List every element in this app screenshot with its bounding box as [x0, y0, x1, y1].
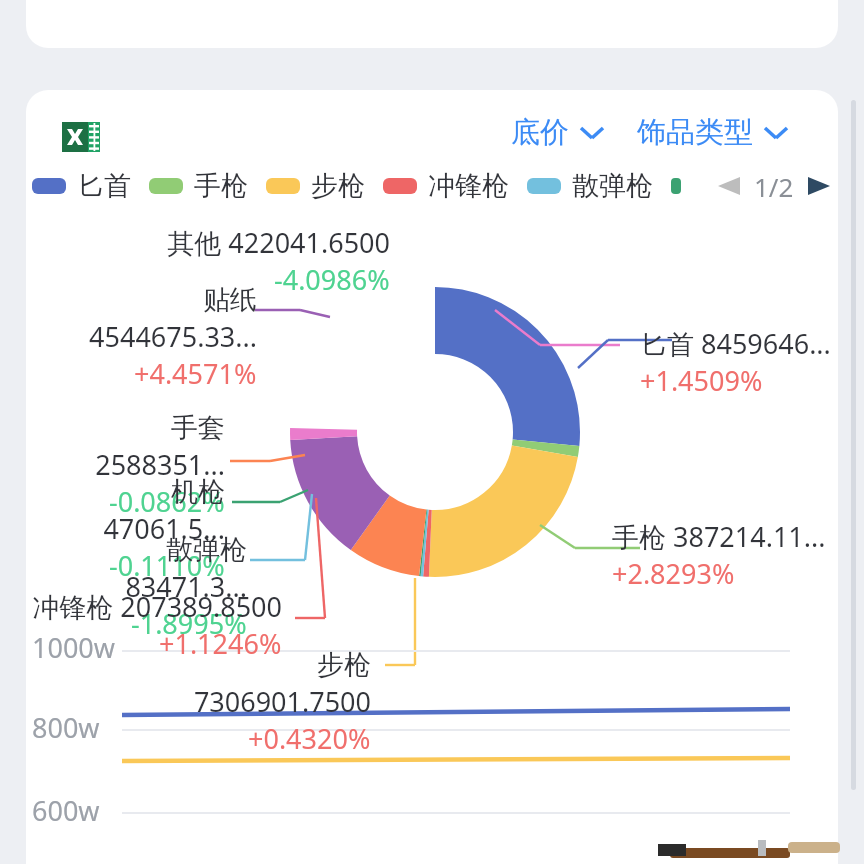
staticText: 贴纸 4544675.33... — [42, 280, 257, 355]
staticText: 匕首 8459646... — [640, 325, 831, 362]
staticText: 饰品类型 — [637, 114, 753, 151]
staticText: +2.8293% — [612, 555, 735, 592]
staticText: 800w — [32, 709, 100, 746]
button[interactable]: Next page — [802, 169, 836, 203]
button[interactable]: 手枪 — [149, 169, 248, 203]
staticText: -4.0986% — [274, 261, 390, 298]
button[interactable]: 底价 — [505, 114, 609, 151]
staticText: -1.8995% — [131, 605, 247, 642]
staticText: 散弹枪 83471.3... — [42, 530, 247, 605]
staticText: 600w — [32, 792, 100, 829]
staticText: 1000w — [32, 629, 115, 666]
staticText: +4.4571% — [134, 355, 257, 392]
staticText: -0.1110% — [109, 547, 225, 584]
staticText: +0.4320% — [248, 720, 371, 757]
staticText: 步枪 7306901.7500 — [136, 645, 371, 720]
button[interactable]: 步枪 — [266, 169, 365, 203]
button[interactable]: 匕首 — [32, 169, 131, 203]
button[interactable]: 饰品类型 — [631, 114, 793, 151]
staticText: 冲锋枪 — [428, 169, 509, 203]
button[interactable]: 冲锋枪 — [383, 169, 509, 203]
staticText: +1.4509% — [640, 362, 763, 399]
staticText: 散弹枪 — [572, 169, 653, 203]
button[interactable]: Export to Excel — [58, 116, 102, 158]
staticText: 冲锋枪 207389.8500 — [32, 588, 282, 625]
staticText: 1/2 — [754, 169, 794, 204]
staticText: 底价 — [511, 114, 569, 151]
staticText: 其他 422041.6500 — [167, 224, 390, 261]
button[interactable]: 散弹枪 — [527, 169, 653, 203]
staticText: 手枪 387214.11... — [612, 518, 826, 555]
staticText: 机枪 47061.5... — [50, 472, 225, 547]
staticText: -0.0862% — [109, 483, 225, 520]
staticText: 手套 2588351... — [40, 408, 225, 483]
button[interactable]: Previous page — [712, 169, 746, 203]
staticText: 匕首 — [77, 169, 131, 203]
staticText: 手枪 — [194, 169, 248, 203]
staticText: 步枪 — [311, 169, 365, 203]
staticText: +1.1246% — [159, 625, 282, 662]
